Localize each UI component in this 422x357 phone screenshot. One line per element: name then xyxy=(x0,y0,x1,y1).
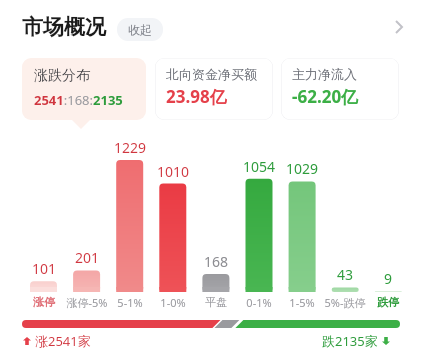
staticText: 168 xyxy=(190,252,242,271)
staticText: 0-1% xyxy=(231,295,287,310)
button[interactable]: 5%-跌停 xyxy=(317,295,373,310)
staticText: 跌2135家 xyxy=(322,332,378,350)
staticText: -62.20亿 xyxy=(292,85,359,108)
staticText: 收起 xyxy=(128,22,152,37)
button[interactable]: 涨2541家 xyxy=(22,332,91,350)
staticText: 2541:168:2135 xyxy=(34,91,123,109)
staticText: 涨2541家 xyxy=(35,332,91,350)
button[interactable]: 收起 xyxy=(117,18,163,41)
button[interactable]: 涨跌分布 xyxy=(22,58,146,120)
staticText: 101 xyxy=(18,259,70,278)
staticText: 1054 xyxy=(233,157,285,176)
button[interactable]: 主力净流入 xyxy=(281,58,399,120)
staticText: 5-1% xyxy=(102,295,158,310)
staticText: 市场概况 xyxy=(22,14,106,40)
button[interactable]: 1-5% xyxy=(274,295,330,310)
button[interactable]: 北向资金净买额 xyxy=(155,58,273,120)
staticText: 201 xyxy=(61,248,113,267)
button[interactable]: 平盘 xyxy=(188,295,244,309)
button[interactable]: 跌2135家 xyxy=(322,332,391,350)
button[interactable]: 涨停-5% xyxy=(59,295,115,310)
staticText: 1010 xyxy=(147,162,199,181)
button[interactable]: 0-1% xyxy=(231,295,287,310)
staticText: 1029 xyxy=(276,159,328,178)
staticText: 1-0% xyxy=(145,295,201,310)
staticText: 北向资金净买额 xyxy=(166,66,257,82)
staticText: 1-5% xyxy=(274,295,330,310)
staticText: 23.98亿 xyxy=(166,85,227,108)
staticText: 涨跌分布 xyxy=(34,67,90,85)
staticText: 5%-跌停 xyxy=(317,295,373,310)
staticText: 涨停 xyxy=(16,295,72,309)
staticText: 平盘 xyxy=(188,295,244,309)
staticText: 主力净流入 xyxy=(292,66,357,82)
staticText: 43 xyxy=(319,265,371,284)
staticText: 9 xyxy=(362,269,414,288)
staticText: 涨停-5% xyxy=(59,295,115,310)
staticText: 1229 xyxy=(104,138,156,157)
button[interactable]: 跌停 xyxy=(360,295,416,309)
button[interactable]: 1-0% xyxy=(145,295,201,310)
button[interactable]: 5-1% xyxy=(102,295,158,310)
button[interactable]: 涨停 xyxy=(16,295,72,309)
button[interactable]: More xyxy=(386,14,412,40)
staticText: 跌停 xyxy=(360,295,416,309)
